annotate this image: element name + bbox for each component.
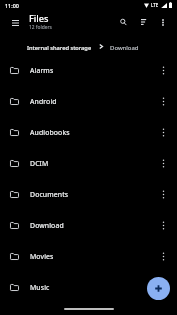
button[interactable]: More options for Download [150,212,176,238]
button[interactable]: Documents [0,179,177,209]
button[interactable]: More options for Documents [150,181,176,207]
button[interactable]: More options for Music [150,274,176,300]
staticText: Android [30,97,57,106]
button[interactable]: Music [0,272,177,302]
staticText: Music [30,283,50,292]
staticText: LTE [151,2,159,8]
button[interactable]: More options for DCIM [150,150,176,176]
button[interactable]: More options for Android [150,88,176,114]
button[interactable]: Internal shared storage [27,44,92,52]
button[interactable]: Alarms [0,55,177,85]
button[interactable]: Sort [133,11,155,33]
button[interactable]: DCIM [0,148,177,178]
button[interactable]: Download [110,44,139,52]
staticText: DCIM [30,159,49,168]
button[interactable]: Movies [0,241,177,271]
button[interactable]: Audiobooks [0,117,177,147]
button[interactable]: Download [0,210,177,240]
button[interactable]: More options for Alarms [150,57,176,83]
button[interactable]: Menu [4,12,26,34]
staticText: Alarms [30,66,54,75]
staticText: Download [30,221,64,230]
staticText: 11:00 [5,2,19,9]
button[interactable]: Search [112,11,134,33]
staticText: Documents [30,190,69,199]
button[interactable]: Android [0,86,177,116]
button[interactable]: Create new [147,277,170,300]
button[interactable]: More options for Movies [150,243,176,269]
staticText: Movies [30,252,54,261]
staticText: Audiobooks [30,128,70,137]
button[interactable]: More options for Audiobooks [150,119,176,145]
staticText: 12 folders [29,24,52,31]
staticText: Files [29,12,49,25]
button[interactable]: More options [152,11,174,33]
